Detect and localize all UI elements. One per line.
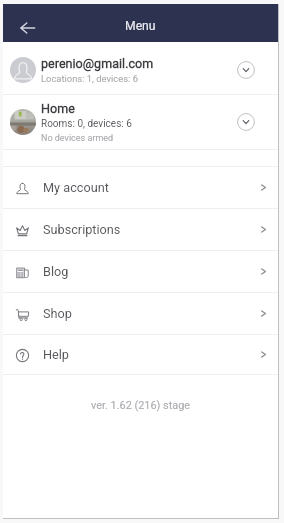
button[interactable]: Back — [11, 12, 43, 44]
staticText: Subscriptions — [43, 222, 121, 237]
button[interactable]: Shop — [3, 293, 278, 334]
staticText: My account — [43, 180, 109, 195]
button[interactable]: perenio@gmail.com — [3, 42, 278, 94]
button[interactable]: Blog — [3, 251, 278, 292]
staticText: Blog — [43, 264, 69, 279]
button[interactable]: Subscriptions — [3, 209, 278, 250]
button[interactable]: Help — [3, 335, 278, 374]
staticText: Locations: 1, devices: 6 — [41, 73, 138, 84]
staticText: No devices armed — [41, 133, 114, 144]
staticText: Shop — [43, 306, 72, 321]
staticText: Rooms: 0, devices: 6 — [41, 118, 132, 130]
staticText: perenio@gmail.com — [41, 56, 154, 71]
button[interactable]: My account — [3, 167, 278, 208]
button[interactable]: Expand — [237, 61, 255, 79]
button[interactable]: Home — [3, 95, 278, 149]
staticText: Help — [43, 347, 69, 362]
staticText: ver. 1.62 (216) stage — [3, 399, 278, 412]
button[interactable]: Expand — [237, 113, 255, 131]
staticText: Home — [41, 101, 75, 116]
staticText: Menu — [125, 19, 156, 33]
